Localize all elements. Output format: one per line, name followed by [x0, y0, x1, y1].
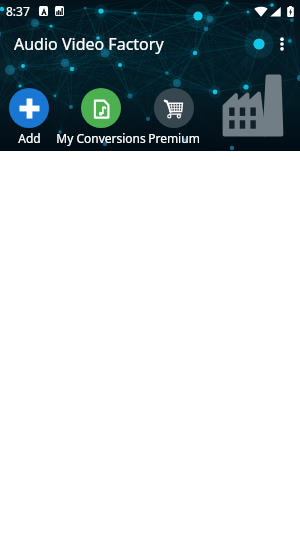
- staticText: Premium: [148, 130, 200, 146]
- button[interactable]: Premium: [143, 84, 205, 146]
- staticText: Add: [18, 130, 41, 146]
- staticText: 8:37: [6, 3, 30, 19]
- button[interactable]: More options: [265, 27, 299, 61]
- button[interactable]: Add: [0, 84, 58, 146]
- staticText: Audio Video Factory: [14, 33, 164, 55]
- button[interactable]: My Conversions: [55, 84, 147, 146]
- staticText: My Conversions: [56, 130, 146, 146]
